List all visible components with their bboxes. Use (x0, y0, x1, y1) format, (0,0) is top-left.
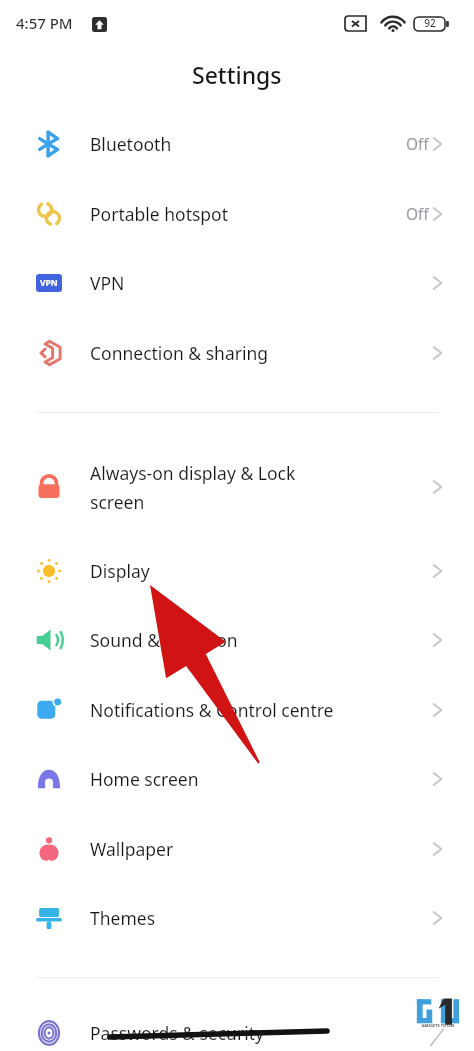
button[interactable]: VPN (0, 248, 474, 317)
staticText: VPN (40, 277, 58, 289)
button[interactable]: Wallpaper (0, 814, 474, 883)
button[interactable]: Bluetooth (0, 109, 474, 178)
staticText: Notifications & Control centre (90, 698, 334, 722)
staticText: Connection & sharing (90, 341, 269, 365)
button[interactable]: Display (0, 536, 474, 605)
button[interactable]: Portable hotspot (0, 179, 474, 248)
button[interactable]: Passwords and security (0, 998, 474, 1051)
staticText: Settings (192, 59, 282, 90)
button[interactable]: Connection and sharing (0, 318, 474, 387)
button[interactable]: Sound and vibration (0, 605, 474, 674)
staticText: Portable hotspot (90, 202, 229, 226)
button[interactable]: Themes (0, 883, 474, 952)
staticText: Display (90, 559, 150, 583)
staticText: 4:57 PM (16, 13, 73, 33)
staticText: Wallpaper (90, 837, 174, 861)
staticText: VPN (90, 271, 125, 295)
staticText: 92 (424, 16, 436, 30)
staticText: screen (90, 490, 145, 514)
staticText: Bluetooth (90, 132, 172, 156)
button[interactable]: Always-on display & Lock screen (0, 447, 474, 527)
button[interactable]: Home screen (0, 744, 474, 813)
staticText: Off (406, 133, 429, 154)
button[interactable]: Notifications and Control centre (0, 675, 474, 744)
staticText: Themes (90, 906, 156, 930)
staticText: Home screen (90, 767, 199, 791)
staticText: GADGETS TO USE (421, 1023, 455, 1028)
staticText: Sound & vibration (90, 628, 238, 652)
staticText: Always-on display & Lock (90, 461, 296, 485)
staticText: Passwords & security (90, 1021, 264, 1045)
staticText: Off (406, 203, 429, 224)
